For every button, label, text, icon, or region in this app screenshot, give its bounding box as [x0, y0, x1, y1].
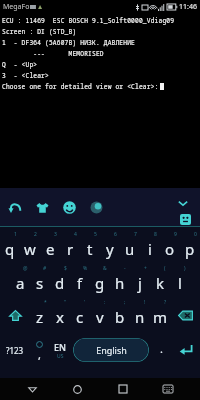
button[interactable]: 8 — [140, 230, 160, 264]
staticText: @ — [23, 265, 28, 272]
staticText: l — [178, 273, 182, 293]
button[interactable]: ! — [130, 298, 150, 332]
button[interactable]: 6 — [100, 230, 120, 264]
button[interactable]: 3 — [40, 230, 60, 264]
button[interactable]: 2 — [20, 230, 40, 264]
staticText: n — [135, 307, 145, 327]
button[interactable]: * — [30, 298, 50, 332]
staticText: ! — [144, 299, 146, 306]
staticText: 1 — [14, 231, 17, 238]
button[interactable]: English — [73, 338, 149, 362]
staticText: o — [165, 239, 175, 259]
staticText: MegaFon — [3, 2, 34, 12]
staticText: v — [96, 307, 104, 327]
staticText: " — [64, 299, 67, 306]
staticText: x — [56, 307, 64, 327]
staticText: r — [67, 239, 74, 259]
staticText: 8 — [154, 231, 157, 238]
button[interactable]: 4 — [60, 230, 80, 264]
button[interactable]: , — [29, 332, 49, 368]
button[interactable]: % — [70, 264, 90, 298]
staticText: 1 - DF364 (5A607B) НИЗК. ДАВЛЕНИЕ — [2, 38, 136, 46]
button[interactable]: 5 — [80, 230, 100, 264]
button[interactable]: ( — [150, 264, 170, 298]
button[interactable]: . — [151, 332, 171, 368]
staticText: d — [55, 273, 65, 293]
button[interactable]: 0 — [180, 230, 200, 264]
button[interactable]: @ — [10, 264, 30, 298]
staticText: j — [138, 273, 142, 293]
staticText: $ — [64, 265, 67, 272]
staticText: * — [44, 299, 47, 306]
staticText: EN — [54, 341, 66, 353]
button[interactable]: & — [90, 264, 110, 298]
staticText: + — [144, 265, 147, 272]
button[interactable]: EN — [49, 332, 71, 368]
staticText: g — [95, 273, 105, 293]
button[interactable]: ; — [110, 298, 130, 332]
button[interactable]: Collapse keyboard — [176, 196, 190, 210]
staticText: c — [76, 307, 84, 327]
button[interactable]: Undo — [8, 200, 23, 215]
staticText: 2 — [34, 231, 37, 238]
button[interactable]: Recents — [110, 378, 136, 400]
staticText: Q - <Up> — [2, 60, 38, 68]
staticText: 7 — [134, 231, 137, 238]
button[interactable]: Back — [19, 378, 45, 400]
button[interactable]: ' — [70, 298, 90, 332]
staticText: h — [115, 273, 125, 293]
button[interactable]: Stickers — [180, 214, 191, 225]
staticText: # — [43, 265, 47, 272]
staticText: 5 — [94, 231, 97, 238]
button[interactable]: 7 — [120, 230, 140, 264]
button[interactable]: More — [89, 200, 104, 215]
staticText: --- MEMORISED — [2, 49, 104, 57]
staticText: u — [125, 239, 135, 259]
staticText: ; — [124, 299, 126, 306]
staticText: f — [77, 273, 83, 293]
staticText: . — [160, 341, 163, 356]
staticText: 3 — [54, 231, 57, 238]
button[interactable]: Shift — [0, 298, 30, 332]
staticText: i — [148, 239, 152, 259]
button[interactable]: Emoji — [62, 200, 77, 215]
button[interactable]: : — [90, 298, 110, 332]
staticText: z — [36, 307, 44, 327]
button[interactable]: ? — [150, 298, 170, 332]
staticText: ?123 — [6, 345, 24, 356]
button[interactable]: ) — [170, 264, 190, 298]
staticText: e — [46, 239, 55, 259]
staticText: Screen : DI (STD_B) — [2, 27, 77, 35]
button[interactable]: Enter — [171, 332, 200, 368]
staticText: English — [96, 344, 127, 356]
button[interactable]: 9 — [160, 230, 180, 264]
staticText: 3 - <Clear> — [2, 71, 49, 79]
staticText: US — [57, 353, 64, 360]
staticText: 11:46 — [179, 2, 197, 12]
button[interactable]: " — [50, 298, 70, 332]
staticText: s — [36, 273, 44, 293]
staticText: - — [124, 265, 126, 272]
staticText: a — [16, 273, 25, 293]
button[interactable]: Home — [64, 378, 90, 400]
staticText: w — [24, 239, 36, 259]
staticText: t — [87, 239, 93, 259]
button[interactable]: ?123 — [0, 332, 29, 368]
staticText: b — [115, 307, 125, 327]
button[interactable]: + — [130, 264, 150, 298]
staticText: 0 — [194, 231, 197, 238]
button[interactable]: 1 — [0, 230, 20, 264]
button[interactable]: # — [30, 264, 50, 298]
button[interactable]: Backspace — [170, 298, 200, 332]
staticText: & — [103, 265, 107, 272]
button[interactable]: - — [110, 264, 130, 298]
staticText: 4 — [74, 231, 77, 238]
button[interactable]: Hide keyboard — [155, 378, 181, 400]
staticText: p — [185, 239, 195, 259]
staticText: % — [83, 265, 88, 272]
staticText: q — [5, 239, 15, 259]
staticText: y — [106, 239, 114, 259]
button[interactable]: Theme — [35, 200, 50, 215]
staticText: 6 — [114, 231, 117, 238]
button[interactable]: $ — [50, 264, 70, 298]
